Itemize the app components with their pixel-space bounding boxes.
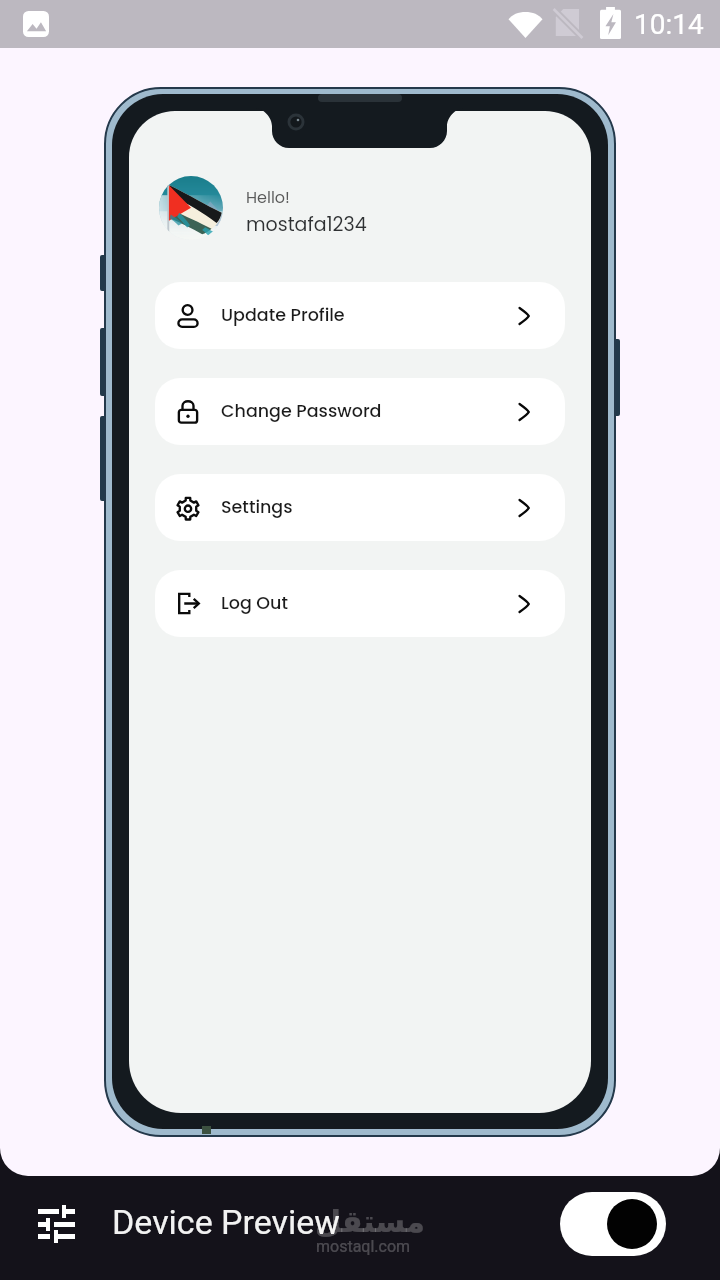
button[interactable]: Change Password (155, 378, 565, 445)
staticText: Update Profile (221, 303, 345, 328)
staticText: Log Out (221, 591, 288, 616)
button[interactable]: Preview settings (29, 1194, 83, 1248)
staticText: مستقل (315, 1204, 425, 1239)
button[interactable]: Settings (155, 474, 565, 541)
staticText: Hello! (246, 186, 290, 208)
staticText: Change Password (221, 399, 382, 424)
staticText: 10:14 (634, 8, 704, 41)
button[interactable]: Log Out (155, 570, 565, 637)
staticText: Settings (221, 495, 293, 520)
staticText: mostaql.com (316, 1237, 411, 1256)
button[interactable]: Update Profile (155, 282, 565, 349)
staticText: Device Preview (112, 1202, 340, 1242)
button[interactable]: Toggle device preview (560, 1192, 666, 1256)
staticText: mostafa1234 (246, 211, 367, 238)
